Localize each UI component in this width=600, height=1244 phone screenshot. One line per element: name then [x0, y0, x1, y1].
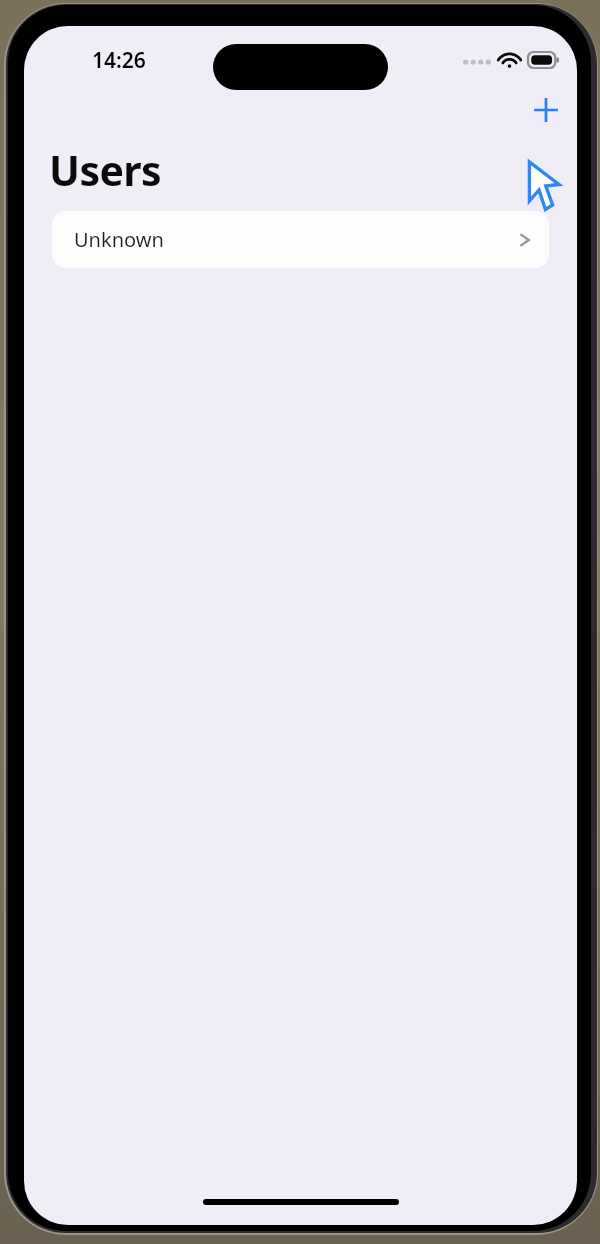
button[interactable]: Add user: [523, 88, 569, 132]
button[interactable]: Unknown: [52, 211, 549, 268]
staticText: Unknown: [74, 226, 164, 253]
staticText: Users: [49, 142, 161, 198]
staticText: 14:26: [92, 46, 146, 75]
